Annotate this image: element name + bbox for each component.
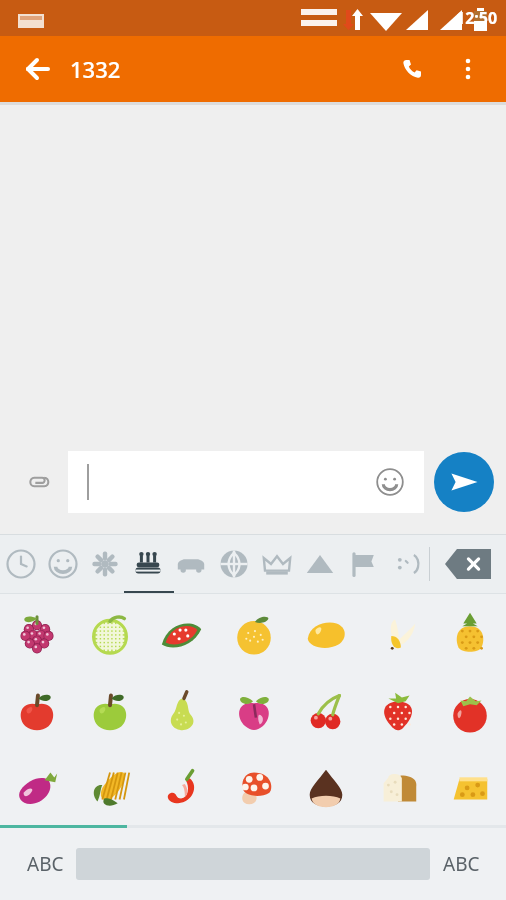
button[interactable]: Emoji 11 (290, 671, 362, 748)
staticText: ABC (443, 851, 480, 877)
button[interactable]: Category 0 (0, 535, 42, 593)
button[interactable]: Emoji (68, 451, 424, 513)
button[interactable]: Call (388, 45, 436, 93)
button[interactable]: Category 2 (84, 535, 126, 593)
button[interactable]: Emoji 15 (73, 748, 146, 825)
staticText: 1332 (70, 54, 121, 84)
button[interactable]: Attach (16, 459, 62, 505)
staticText: ABC (27, 851, 64, 877)
button[interactable]: Emoji (370, 462, 410, 502)
button[interactable]: Category 7 (298, 535, 341, 593)
button[interactable]: Category 5 (212, 535, 255, 593)
button[interactable]: Emoji 0 (0, 594, 73, 671)
button[interactable]: Category 1 (42, 535, 84, 593)
button[interactable]: Send (434, 452, 494, 512)
button[interactable]: Emoji 18 (290, 748, 362, 825)
button[interactable]: Back (14, 45, 62, 93)
button[interactable]: ABC (430, 840, 492, 888)
button[interactable]: Emoji 7 (0, 671, 73, 748)
button[interactable]: Emoji 3 (218, 594, 290, 671)
button[interactable]: Category 8 (341, 535, 384, 593)
button[interactable]: Category 4 (169, 535, 212, 593)
button[interactable]: Emoji 12 (362, 671, 434, 748)
button[interactable]: Emoji 20 (434, 748, 506, 825)
button[interactable]: Emoji 17 (218, 748, 290, 825)
button[interactable]: Backspace (430, 535, 506, 593)
button[interactable]: Category 6 (255, 535, 298, 593)
button[interactable]: Emoji 5 (362, 594, 434, 671)
button[interactable]: Emoji 2 (146, 594, 218, 671)
button[interactable]: Emoji 4 (290, 594, 362, 671)
button[interactable]: Emoji 14 (0, 748, 73, 825)
button[interactable]: Emoji 13 (434, 671, 506, 748)
button[interactable]: Category 3 (126, 535, 169, 593)
button[interactable]: Emoji 8 (73, 671, 146, 748)
button[interactable]: Emoji 19 (362, 748, 434, 825)
button[interactable]: Category 9 (384, 535, 429, 593)
button[interactable]: Emoji 10 (218, 671, 290, 748)
button[interactable]: Emoji 9 (146, 671, 218, 748)
button[interactable]: More options (444, 45, 492, 93)
button[interactable]: Emoji 1 (73, 594, 146, 671)
button[interactable]: ABC (14, 840, 76, 888)
button[interactable]: Emoji 16 (146, 748, 218, 825)
button[interactable]: Emoji 6 (434, 594, 506, 671)
staticText: 12:50 (456, 7, 498, 29)
